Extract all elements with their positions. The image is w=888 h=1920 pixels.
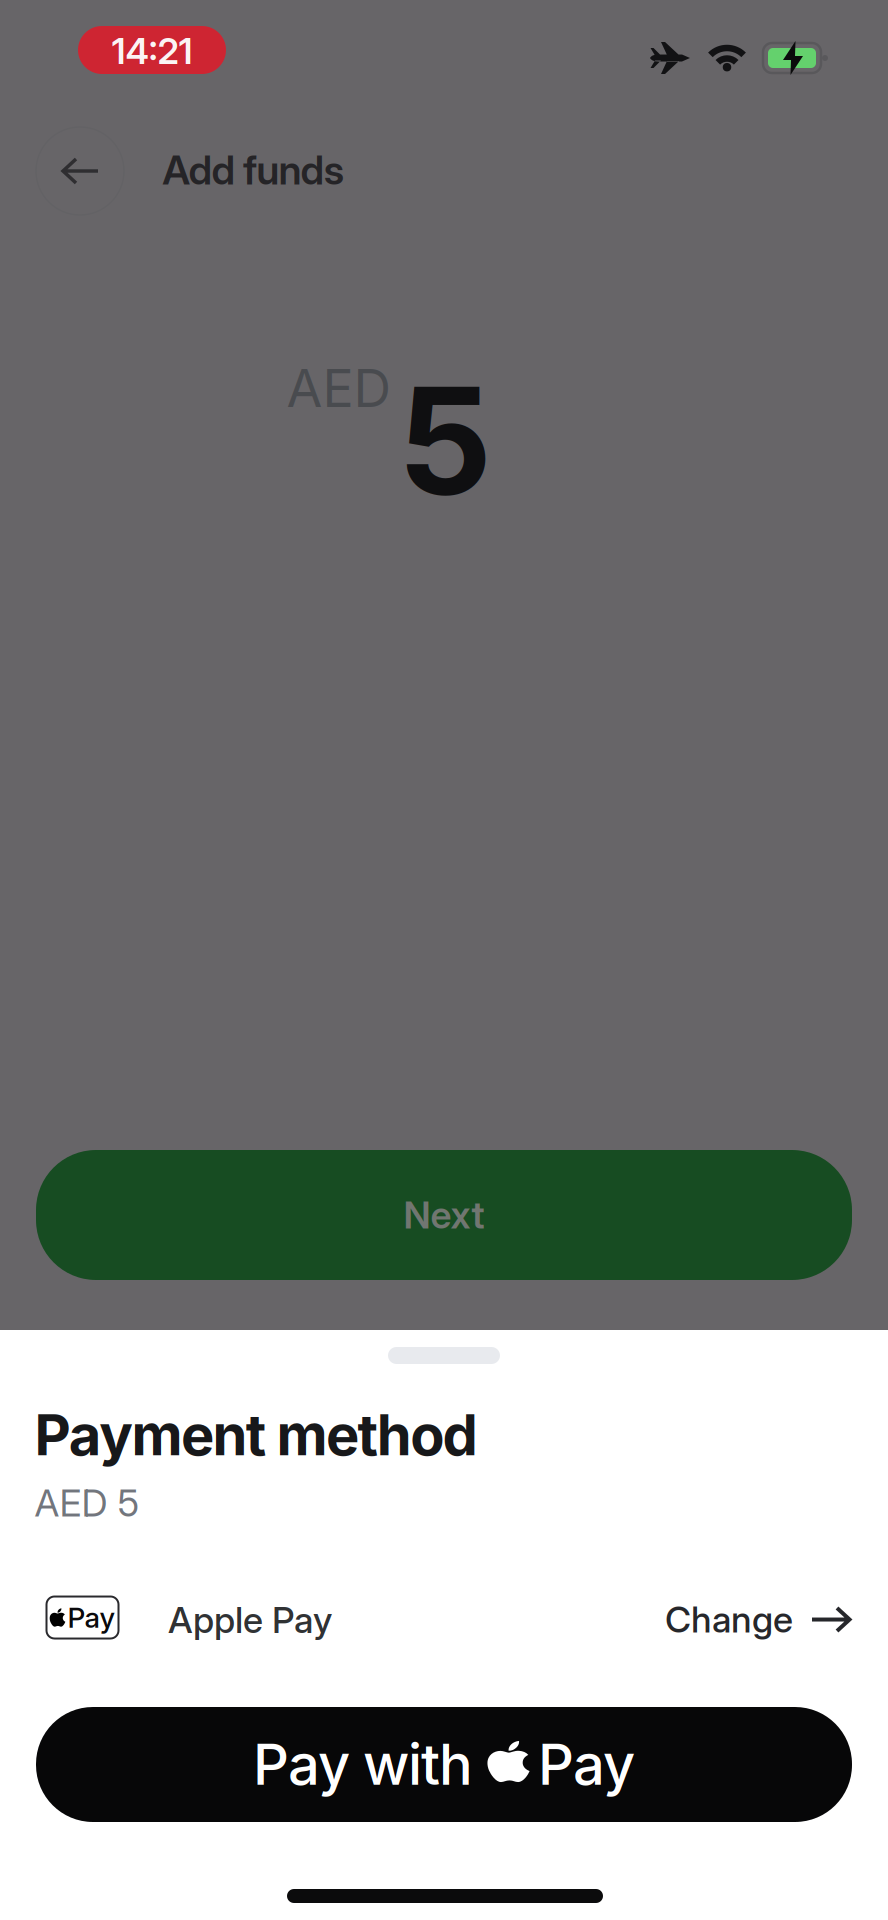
staticText: Apple Pay (168, 1599, 332, 1641)
button[interactable]: Apple Pay (46, 1596, 118, 1638)
staticText: AED 5 (34, 1481, 139, 1525)
staticText: Pay (538, 1731, 635, 1798)
button[interactable]: Pay with Apple Pay (36, 1707, 852, 1822)
button[interactable]: Change payment method (665, 1598, 851, 1641)
staticText: 5 (397, 354, 492, 528)
staticText: 14:21 (111, 30, 192, 72)
staticText: Payment method (34, 1402, 478, 1468)
staticText: AED (286, 357, 391, 419)
staticText: Pay (67, 1601, 115, 1634)
button[interactable]: Back (36, 127, 124, 215)
staticText: Next (403, 1193, 484, 1237)
button[interactable]: Return to recording (78, 26, 226, 74)
button[interactable]: Next (36, 1150, 852, 1280)
staticText: Add funds (162, 146, 344, 194)
staticText: Change (665, 1598, 793, 1641)
staticText: Pay with (253, 1731, 473, 1798)
